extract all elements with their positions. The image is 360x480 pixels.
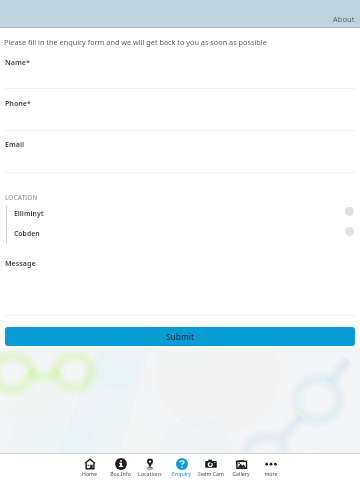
staticText: Locations	[138, 470, 162, 477]
staticText: more	[264, 470, 278, 477]
button[interactable]: Email	[5, 134, 355, 173]
button[interactable]: Locations	[134, 454, 166, 480]
staticText: Submit	[166, 331, 195, 342]
button[interactable]: About	[323, 10, 360, 28]
staticText: Cobden	[14, 229, 40, 238]
staticText: Bus.Info	[110, 470, 131, 477]
button[interactable]: Elliminyt	[0, 206, 360, 226]
staticText: About	[333, 14, 355, 24]
staticText: Message	[5, 259, 36, 269]
button[interactable]: Home	[73, 454, 105, 480]
button[interactable]: Message	[5, 253, 355, 316]
button[interactable]: Gallery	[225, 454, 257, 480]
staticText: Enquiry	[172, 470, 191, 477]
button[interactable]: Enquiry	[165, 454, 197, 480]
staticText: Phone*	[5, 99, 31, 109]
staticText: Swim Cam	[198, 470, 224, 477]
staticText: Email	[5, 140, 25, 150]
button[interactable]: Phone*	[5, 93, 355, 131]
button[interactable]: Name*	[5, 52, 355, 89]
button[interactable]: Swim Cam	[195, 454, 227, 480]
button[interactable]: Submit	[5, 327, 355, 346]
button[interactable]: Bus.Info	[104, 454, 136, 480]
staticText: Elliminyt	[14, 209, 44, 218]
staticText: Home	[82, 470, 97, 477]
staticText: Name*	[5, 58, 30, 68]
staticText: Please fill in the enquiry form and we w…	[4, 37, 267, 47]
button[interactable]: Cobden	[0, 226, 360, 246]
staticText: LOCATION	[5, 193, 38, 202]
button[interactable]: more	[255, 454, 287, 480]
staticText: Gallery	[232, 470, 250, 477]
